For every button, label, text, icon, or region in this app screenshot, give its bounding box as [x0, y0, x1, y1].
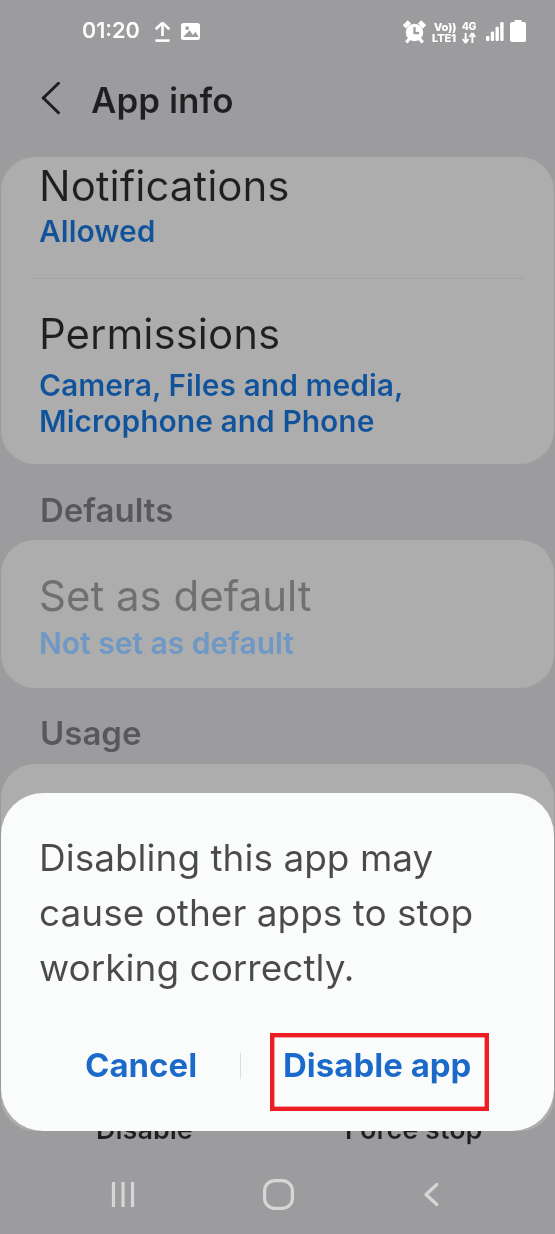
staticText: App info	[91, 79, 234, 121]
staticText: Camera, Files and media, Microphone and …	[39, 367, 404, 439]
button[interactable]: Disable app	[269, 1026, 486, 1104]
button[interactable]: Force stop	[281, 1113, 546, 1163]
button[interactable]: Permissions	[1, 279, 554, 464]
button[interactable]: Set as default	[1, 540, 554, 688]
staticText: LTE1	[432, 31, 456, 44]
staticText: Disable	[96, 1113, 193, 1146]
button[interactable]: Disable	[12, 1113, 277, 1163]
staticText: Not set as default	[39, 625, 294, 661]
staticText: Set as default	[39, 570, 312, 621]
staticText: 01:20	[82, 17, 140, 44]
button[interactable]: Cancel	[33, 1026, 250, 1104]
staticText: Usage	[40, 713, 142, 753]
staticText: Disabling this app may cause other apps …	[39, 827, 474, 992]
staticText: Notifications	[39, 160, 290, 211]
staticText: Allowed	[39, 213, 156, 249]
staticText: Force stop	[345, 1113, 483, 1146]
staticText: 4G	[462, 20, 477, 32]
button[interactable]: Recent apps	[91, 1162, 155, 1226]
staticText: Disable app	[283, 1045, 472, 1085]
button[interactable]: Back	[400, 1162, 464, 1226]
staticText: Cancel	[85, 1045, 198, 1085]
staticText: Vo))	[434, 20, 457, 33]
button[interactable]: Notifications	[1, 157, 554, 278]
staticText: Defaults	[40, 490, 174, 530]
staticText: Permissions	[39, 308, 281, 359]
button[interactable]: Home	[246, 1162, 310, 1226]
button[interactable]: Navigate up	[28, 76, 72, 120]
